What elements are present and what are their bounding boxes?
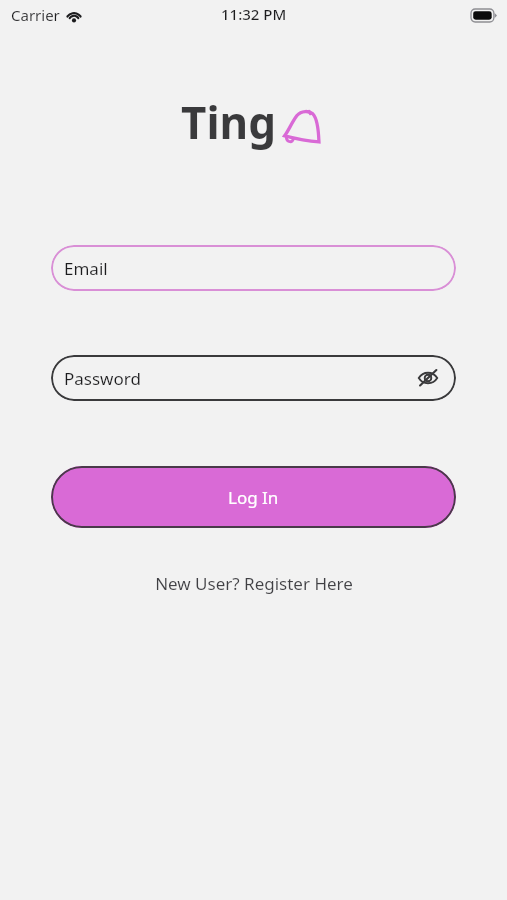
button[interactable]: Email — [51, 245, 456, 291]
staticText: Password — [64, 367, 141, 390]
staticText: Ting — [181, 92, 276, 152]
button[interactable]: Log In — [51, 466, 456, 528]
button[interactable]: New User? Register Here — [51, 566, 456, 601]
staticText: Email — [64, 257, 108, 280]
button[interactable]: Password — [51, 355, 456, 401]
staticText: 11:32 PM — [221, 4, 287, 24]
staticText: Carrier — [11, 5, 60, 25]
button[interactable]: Show password — [413, 363, 443, 393]
staticText: Log In — [228, 486, 279, 509]
staticText: New User? Register Here — [155, 572, 353, 595]
